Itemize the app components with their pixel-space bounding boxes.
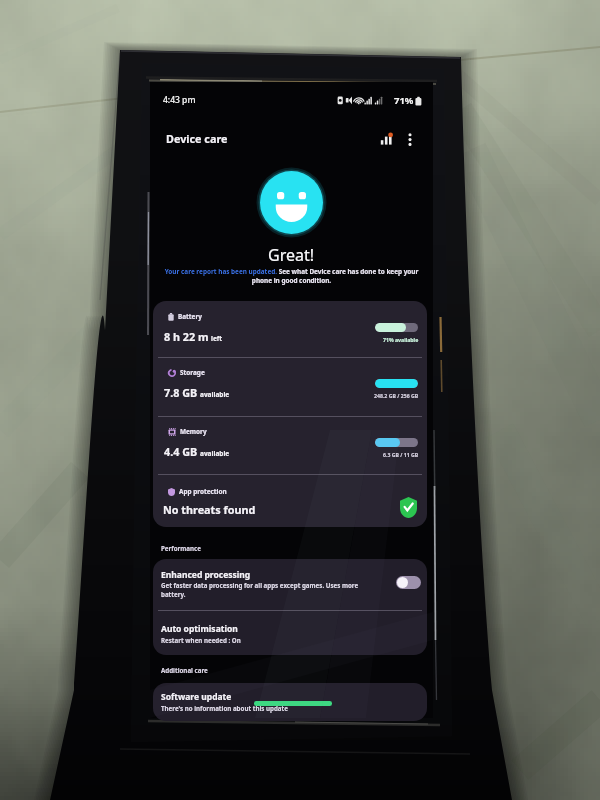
button[interactable]: More options (399, 128, 421, 150)
button[interactable]: Enhanced processing (153, 559, 427, 610)
staticText: Get faster data processing for all apps … (161, 581, 380, 599)
staticText: Your care report has been updated. See w… (161, 267, 422, 285)
staticText: Additional care (161, 666, 208, 674)
staticText: 4:43 pm (163, 94, 196, 106)
button[interactable]: Usage statistics (375, 128, 397, 150)
staticText: 71% (394, 94, 414, 107)
button[interactable]: Storage (153, 357, 427, 415)
button[interactable]: Auto optimisation (153, 611, 427, 655)
button[interactable]: Memory (153, 416, 427, 474)
staticText: Performance (161, 544, 201, 552)
staticText: No threats found (163, 502, 256, 517)
button[interactable]: Software update (153, 683, 427, 721)
staticText: 248.2 GB / 256 GB (374, 392, 419, 399)
staticText: App protection (179, 487, 227, 496)
staticText: 6.3 GB / 11 GB (383, 451, 419, 458)
staticText: Restart when needed : On (161, 636, 241, 644)
staticText: Auto optimisation (161, 623, 238, 635)
staticText: available (200, 449, 230, 458)
button[interactable]: App protection (153, 475, 427, 523)
button[interactable]: Enhanced processing toggle (396, 576, 421, 589)
staticText: 8 h 22 m (164, 329, 209, 344)
staticText: 4.4 GB (164, 444, 198, 459)
staticText: 71% available (383, 336, 419, 343)
staticText: Memory (180, 427, 207, 436)
staticText: Storage (180, 368, 205, 377)
staticText: left (211, 334, 223, 343)
staticText: Software update (161, 691, 232, 703)
staticText: 7.8 GB (164, 385, 198, 400)
button[interactable]: Battery (153, 301, 427, 359)
staticText: Battery (178, 312, 202, 321)
staticText: Device care (166, 131, 228, 146)
staticText: Great! (268, 244, 315, 266)
staticText: There's no information about this update (161, 704, 288, 712)
staticText: Enhanced processing (161, 569, 251, 581)
staticText: available (200, 390, 230, 399)
